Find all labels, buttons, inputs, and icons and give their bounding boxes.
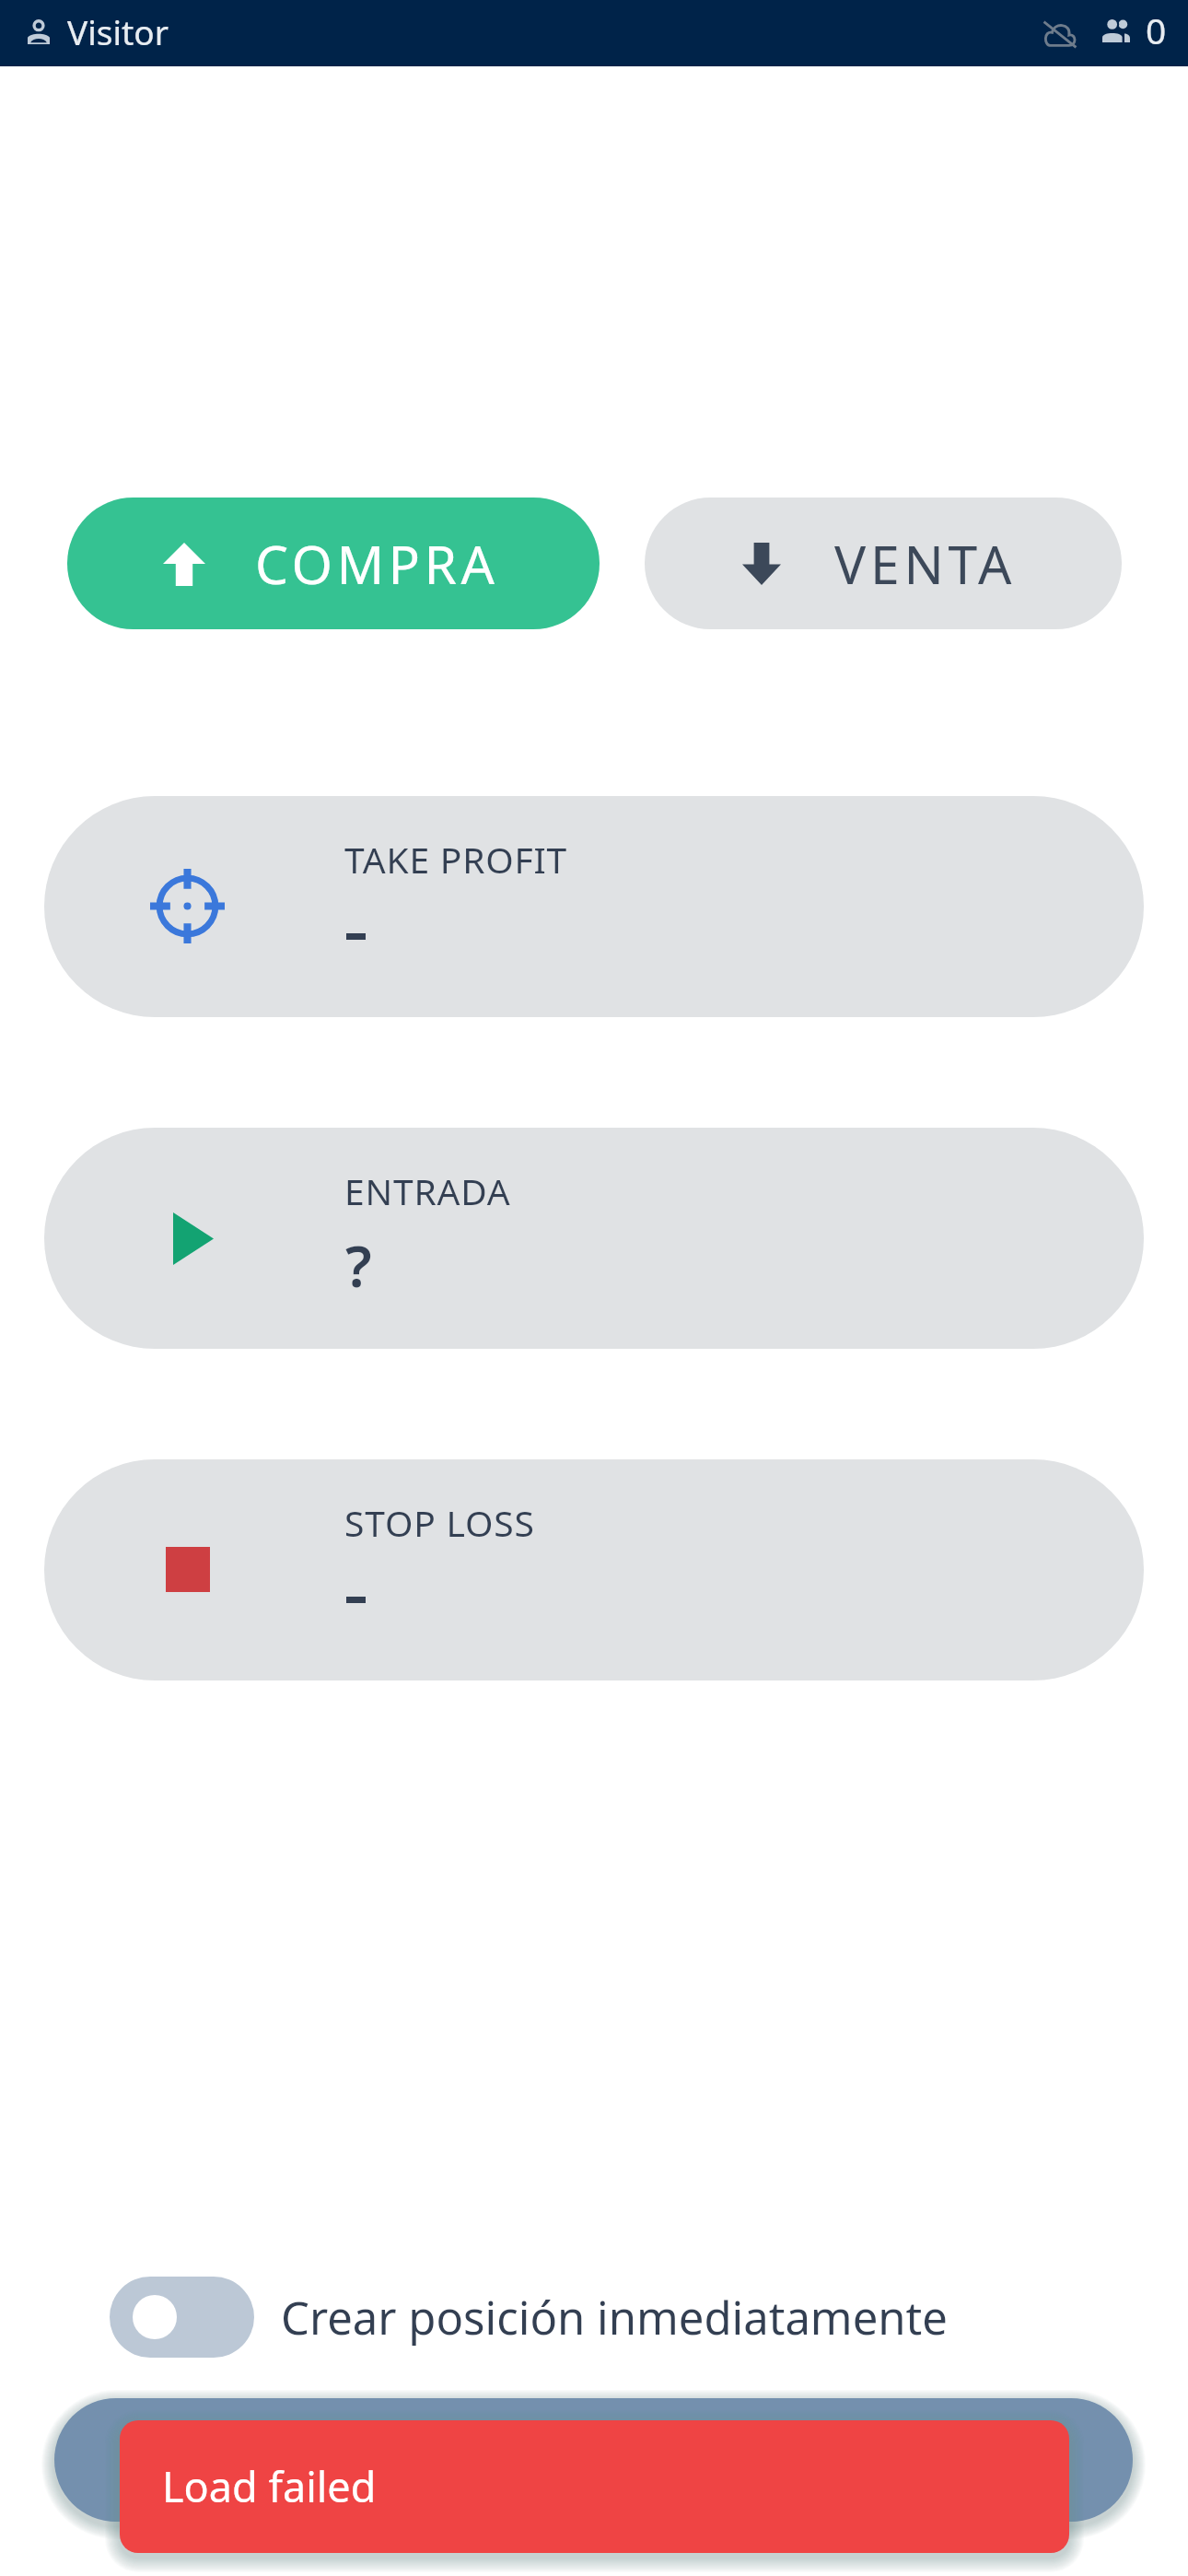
button[interactable]: Crear posición inmediatamente bbox=[110, 2277, 948, 2358]
staticText: ENTRADA bbox=[344, 1166, 511, 1215]
staticText: 0 bbox=[1146, 6, 1167, 54]
button[interactable]: COMPRA bbox=[67, 498, 600, 629]
staticText: STOP LOSS bbox=[344, 1498, 535, 1547]
button[interactable]: Visitor bbox=[18, 2, 179, 63]
button[interactable]: TAKE PROFIT bbox=[44, 796, 1144, 1017]
button[interactable]: Offline bbox=[1039, 10, 1081, 58]
button[interactable]: STOP LOSS bbox=[44, 1459, 1144, 1680]
button[interactable]: ENTRADA bbox=[44, 1128, 1144, 1349]
staticText: Visitor bbox=[67, 8, 169, 54]
staticText: COMPRA bbox=[255, 528, 499, 600]
staticText: VENTA bbox=[834, 528, 1017, 600]
button[interactable]: Crear orden bbox=[54, 2398, 1133, 2522]
staticText: Crear posición inmediatamente bbox=[281, 2287, 948, 2348]
button[interactable]: Connected users bbox=[1102, 7, 1167, 56]
staticText: Load failed bbox=[162, 2458, 377, 2514]
button[interactable]: VENTA bbox=[645, 498, 1122, 629]
staticText: TAKE PROFIT bbox=[344, 835, 568, 884]
staticText: ? bbox=[345, 1226, 372, 1304]
